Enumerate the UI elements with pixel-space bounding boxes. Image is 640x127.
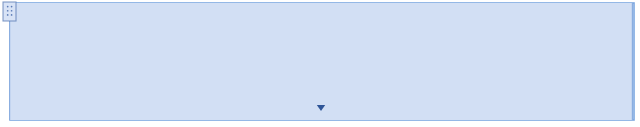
staticText: 2: [105, 0, 113, 16]
button[interactable]: Move equation object: [3, 2, 16, 21]
button[interactable]: Scroll down: [9, 3, 633, 120]
